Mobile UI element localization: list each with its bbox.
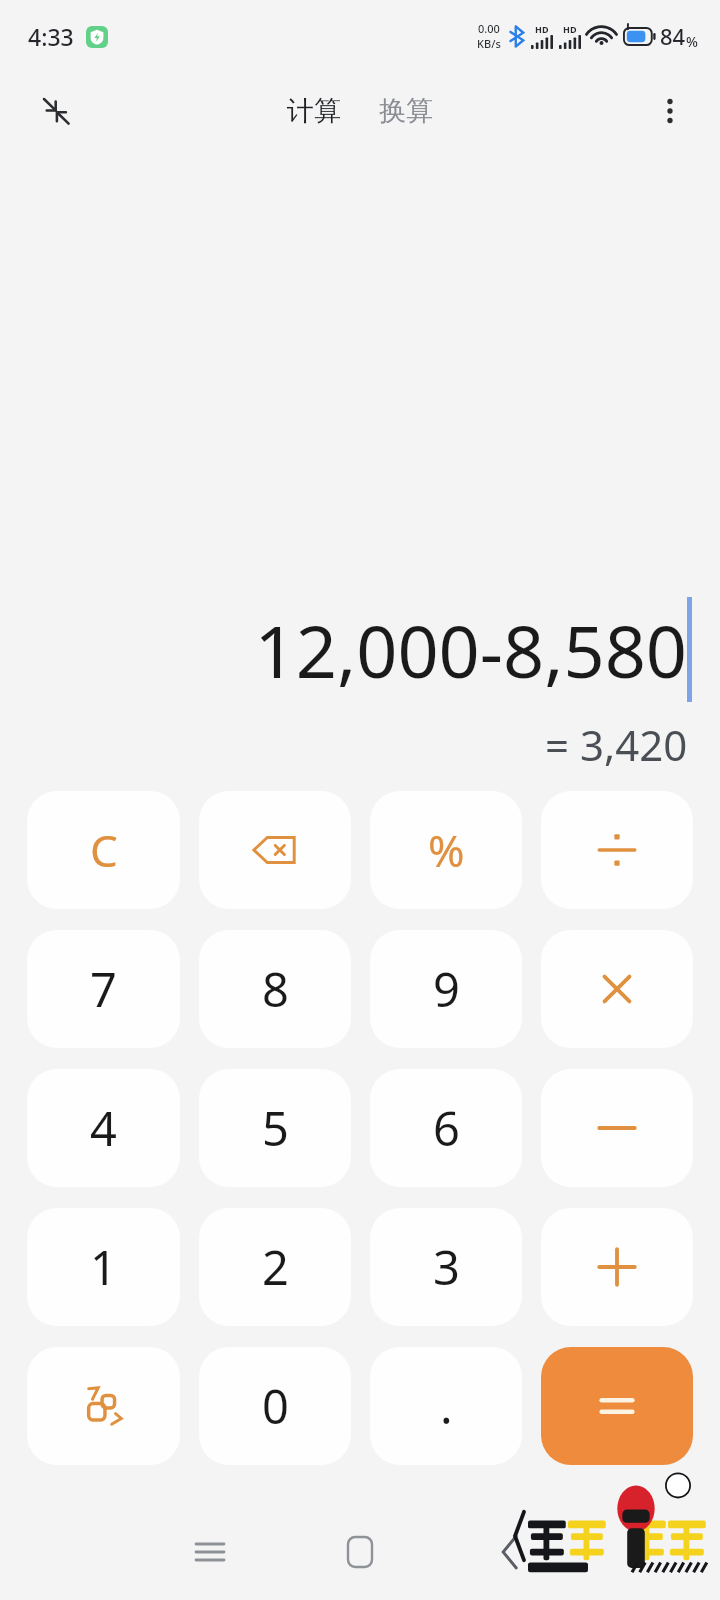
- button[interactable]: 3: [370, 1208, 522, 1326]
- button[interactable]: Handwriting input: [27, 1347, 180, 1465]
- staticText: HD: [563, 23, 577, 35]
- button[interactable]: %: [370, 791, 522, 909]
- staticText: 计算: [287, 94, 341, 128]
- staticText: 8: [262, 957, 289, 1021]
- staticText: 2: [262, 1235, 289, 1299]
- button[interactable]: Back: [479, 1521, 541, 1583]
- button[interactable]: .: [370, 1347, 522, 1465]
- button[interactable]: 9: [370, 930, 522, 1048]
- staticText: 84: [660, 21, 686, 51]
- staticText: C: [90, 820, 118, 880]
- staticText: 7: [90, 957, 117, 1021]
- staticText: 6: [433, 1096, 460, 1160]
- button[interactable]: More options: [644, 85, 696, 137]
- button[interactable]: 0: [199, 1347, 351, 1465]
- button[interactable]: 1: [27, 1208, 180, 1326]
- staticText: 1: [90, 1235, 117, 1299]
- staticText: %: [686, 32, 698, 51]
- button[interactable]: Backspace: [199, 791, 351, 909]
- button[interactable]: 6: [370, 1069, 522, 1187]
- button[interactable]: Home: [329, 1521, 391, 1583]
- staticText: KB/s: [477, 36, 501, 51]
- staticText: 9: [433, 957, 460, 1021]
- button[interactable]: C: [27, 791, 180, 909]
- button[interactable]: 计算: [279, 88, 349, 134]
- staticText: = 3,420: [545, 716, 688, 773]
- button[interactable]: Plus: [541, 1208, 693, 1326]
- button[interactable]: 2: [199, 1208, 351, 1326]
- button[interactable]: Multiply: [541, 930, 693, 1048]
- button[interactable]: Equals: [541, 1347, 693, 1465]
- staticText: HD: [535, 23, 549, 35]
- staticText: %: [428, 820, 465, 880]
- staticText: .: [440, 1374, 453, 1438]
- button[interactable]: Divide: [541, 791, 693, 909]
- staticText: 4:33: [28, 21, 74, 52]
- button[interactable]: Collapse: [30, 85, 82, 137]
- button[interactable]: 4: [27, 1069, 180, 1187]
- button[interactable]: 8: [199, 930, 351, 1048]
- staticText: 12,000-8,580: [254, 601, 687, 699]
- button[interactable]: 5: [199, 1069, 351, 1187]
- staticText: 5: [262, 1096, 289, 1160]
- button[interactable]: Minus: [541, 1069, 693, 1187]
- staticText: 3: [433, 1235, 460, 1299]
- staticText: 换算: [379, 94, 433, 128]
- staticText: 0.00: [478, 21, 500, 36]
- button[interactable]: 换算: [371, 88, 441, 134]
- button[interactable]: 7: [27, 930, 180, 1048]
- staticText: 0: [262, 1374, 289, 1438]
- staticText: 4: [90, 1096, 117, 1160]
- button[interactable]: Recent apps: [179, 1521, 241, 1583]
